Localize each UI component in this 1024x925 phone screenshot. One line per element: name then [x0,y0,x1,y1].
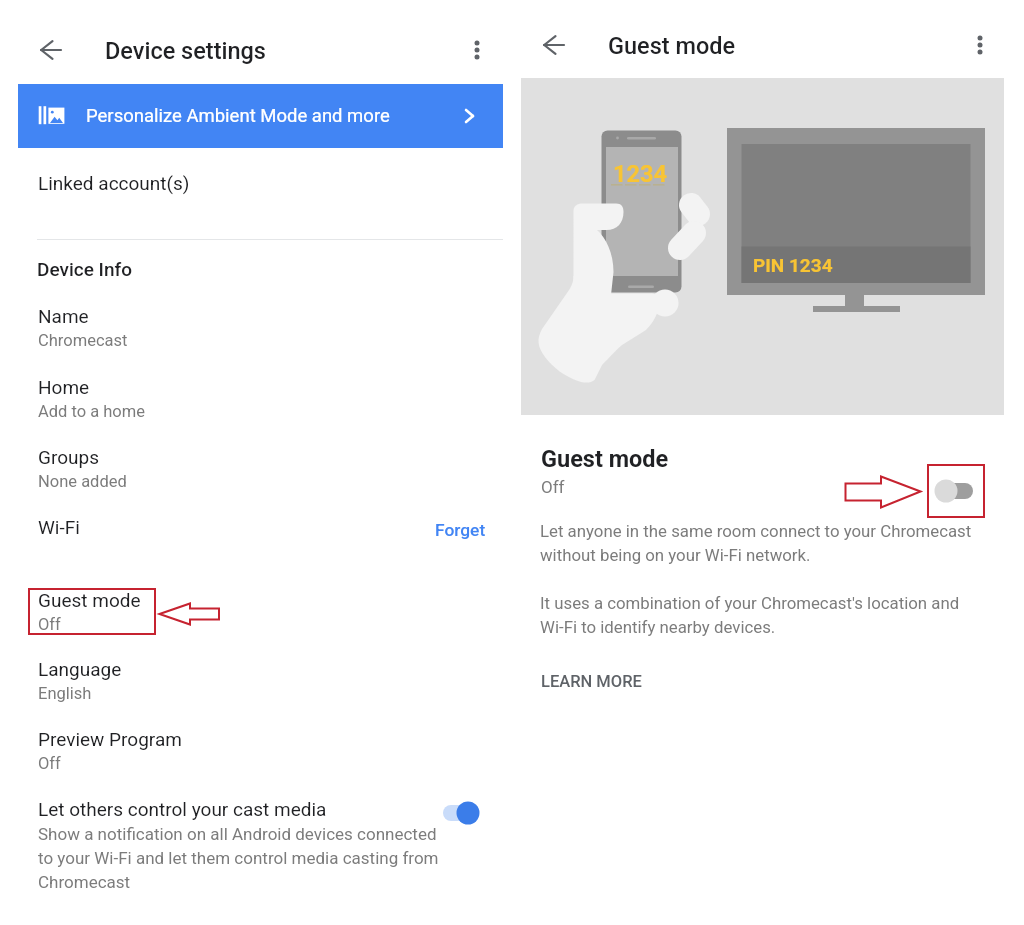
staticText: Chromecast [38,872,131,892]
staticText: Wi-Fi [38,516,80,538]
button[interactable]: Preview Program [18,720,503,768]
staticText: Language [38,658,122,680]
button[interactable]: Language [18,650,503,698]
staticText: English [38,684,92,703]
button[interactable]: Personalize Ambient Mode and more [18,84,503,148]
button[interactable]: LEARN MORE [533,666,651,698]
staticText: Add to a home [38,402,145,421]
button[interactable]: Guest mode [18,581,503,629]
staticText: Forget [435,520,486,540]
staticText: Groups [38,446,99,468]
staticText: Wi-Fi to identify nearby devices. [540,617,776,637]
staticText: Show a notification on all Android devic… [38,824,437,844]
button[interactable]: Name [18,297,503,345]
button[interactable]: More options [958,23,1002,67]
staticText: Personalize Ambient Mode and more [86,105,390,127]
button[interactable]: Wi-Fi [18,512,503,556]
button[interactable]: Guest mode [521,440,901,502]
staticText: Let others control your cast media [38,798,327,820]
staticText: Name [38,305,89,327]
staticText: Home [38,376,90,398]
staticText: LEARN MORE [541,672,642,691]
staticText: without being on your Wi-Fi network. [540,545,811,565]
staticText: to your Wi-Fi and let them control media… [38,848,439,868]
staticText: Linked account(s) [38,172,190,194]
staticText: Off [38,754,61,773]
button[interactable]: Let others control your cast media [436,795,488,831]
button[interactable]: More options [455,28,499,72]
button[interactable]: Home [18,368,503,416]
button[interactable]: Guest mode toggle [928,466,984,516]
button[interactable]: Linked account(s) [18,155,503,225]
staticText: None added [38,472,127,491]
staticText: It uses a combination of your Chromecast… [540,593,960,613]
staticText: Guest mode [608,32,736,60]
staticText: Off [541,477,565,497]
staticText: Chromecast [38,331,128,350]
button[interactable]: Navigate up [29,28,73,72]
staticText: 1234 [613,160,667,188]
staticText: Device Info [37,258,132,280]
staticText: Off [38,615,61,634]
staticText: Guest mode [38,589,141,611]
button[interactable]: Let others control your cast media [18,792,438,908]
staticText: Preview Program [38,728,182,750]
staticText: Device settings [105,37,266,65]
button[interactable]: Groups [18,438,503,486]
staticText: PIN 1234 [753,254,833,276]
button[interactable]: Navigate up [532,23,576,67]
staticText: Guest mode [541,445,669,473]
staticText: Let anyone in the same room connect to y… [540,521,972,541]
button[interactable]: Forget [428,515,494,553]
